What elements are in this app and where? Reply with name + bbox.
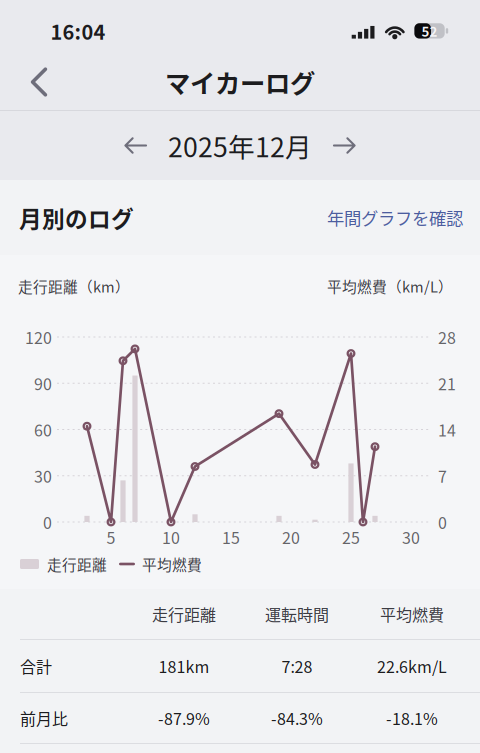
- staticText: マイカーログ: [165, 64, 315, 100]
- staticText: 運転時間: [265, 602, 329, 626]
- staticText: -18.1%: [386, 706, 438, 730]
- staticText: 0: [43, 510, 52, 534]
- staticText: 120: [25, 325, 52, 349]
- staticText: 年間グラフを確認: [327, 205, 463, 230]
- staticText: -84.3%: [271, 706, 323, 730]
- staticText: 平均燃費: [142, 553, 202, 575]
- staticText: 月別のログ: [19, 201, 134, 234]
- button[interactable]: 次の月: [324, 124, 365, 166]
- staticText: 10: [162, 525, 180, 549]
- staticText: 0: [438, 510, 447, 534]
- staticText: 60: [34, 418, 52, 441]
- staticText: 14: [438, 418, 456, 441]
- staticText: 2025年12月: [168, 126, 312, 165]
- button[interactable]: 前の月: [115, 124, 156, 166]
- staticText: 21: [438, 372, 456, 395]
- staticText: 30: [402, 525, 420, 549]
- staticText: 30: [34, 464, 52, 487]
- button[interactable]: 年間グラフを確認: [327, 205, 463, 230]
- staticText: 走行距離: [47, 553, 107, 575]
- staticText: 走行距離: [152, 602, 216, 626]
- staticText: 15: [222, 525, 240, 549]
- staticText: 走行距離（km）: [18, 275, 130, 297]
- staticText: 28: [438, 325, 456, 349]
- staticText: 20: [282, 525, 300, 549]
- staticText: 25: [342, 525, 360, 549]
- staticText: 合計: [20, 654, 52, 678]
- staticText: 平均燃費: [380, 602, 444, 626]
- staticText: 90: [34, 372, 52, 395]
- button[interactable]: 戻る: [0, 58, 64, 106]
- staticText: 16:04: [50, 16, 105, 45]
- staticText: 52: [421, 21, 437, 40]
- staticText: 7: [438, 464, 447, 487]
- staticText: 7:28: [281, 654, 312, 678]
- staticText: 22.6km/L: [377, 654, 447, 678]
- staticText: 5: [106, 525, 115, 549]
- staticText: 181km: [158, 654, 209, 678]
- staticText: -87.9%: [158, 706, 210, 730]
- staticText: 前月比: [20, 706, 68, 730]
- staticText: 平均燃費（km/L）: [327, 275, 453, 297]
